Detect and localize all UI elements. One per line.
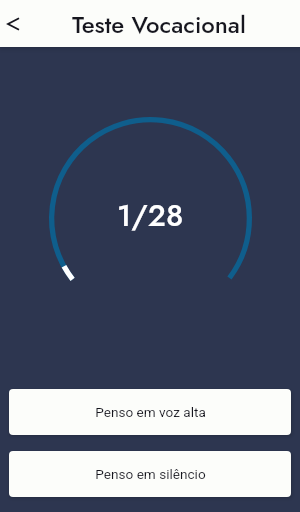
button[interactable]: Penso em silêncio [9, 451, 291, 497]
button[interactable]: Penso em voz alta [9, 389, 291, 435]
staticText: 1/28 [117, 194, 184, 237]
staticText: Penso em silêncio [95, 466, 206, 482]
staticText: Teste Vocacional [72, 7, 246, 42]
button[interactable]: Back [0, 0, 44, 47]
staticText: Penso em voz alta [95, 404, 206, 420]
